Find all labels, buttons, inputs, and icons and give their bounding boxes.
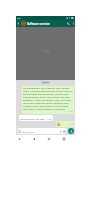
button[interactable]: Back xyxy=(30,135,37,142)
staticText: 11:30 xyxy=(69,123,74,125)
staticText: Today xyxy=(41,49,50,53)
button[interactable]: TODAY xyxy=(41,81,50,84)
button[interactable]: Call xyxy=(65,20,71,27)
staticText: TODAY xyxy=(42,81,49,84)
staticText: Software service xyxy=(27,22,50,26)
button[interactable]: Hide keyboard xyxy=(16,135,23,142)
button[interactable]: De qualidade o seu trabalho com alinhar … xyxy=(22,86,74,114)
staticText: 11:26 xyxy=(47,118,52,120)
button[interactable]: Ocha grande, de abrir xyxy=(19,115,53,121)
button[interactable]: Contact photo xyxy=(21,21,26,26)
button[interactable]: Back xyxy=(16,20,21,27)
button[interactable]: Record voice message xyxy=(68,128,74,134)
staticText: Ocha grande, de abrir xyxy=(20,117,46,120)
button[interactable]: Home xyxy=(45,135,52,142)
button[interactable]: More options xyxy=(71,20,75,27)
button[interactable]: 11:30 xyxy=(56,121,75,127)
button[interactable]: Mensagem xyxy=(17,128,67,134)
staticText: De qualidade o seu trabalho com alinhar … xyxy=(23,86,73,110)
button[interactable]: Software service xyxy=(27,20,65,27)
button[interactable]: Recent apps xyxy=(60,135,67,142)
staticText: 11:24 xyxy=(68,110,73,113)
staticText: 9:41 xyxy=(17,17,22,20)
staticText: Mensagem xyxy=(22,130,35,133)
